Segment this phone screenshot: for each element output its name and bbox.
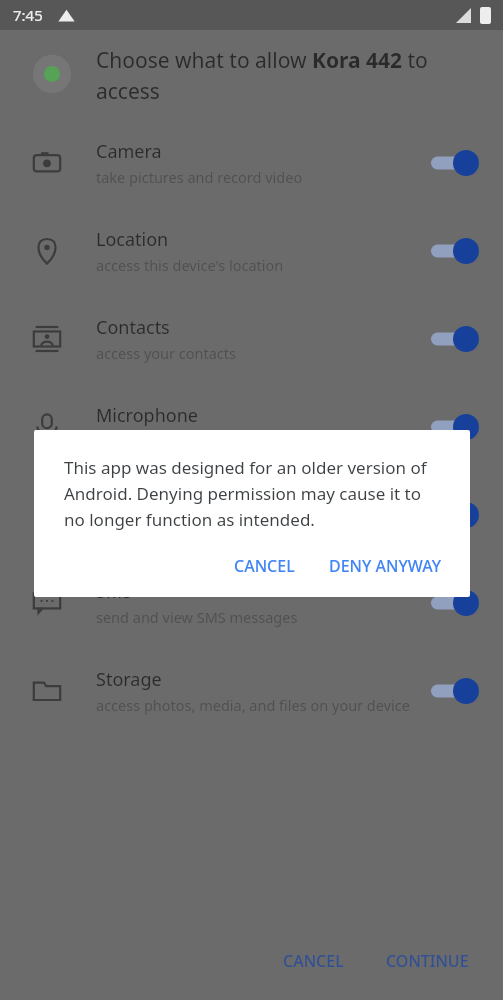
staticText: access this device's location [96,255,284,275]
button[interactable]: DENY ANYWAY [317,545,454,587]
button[interactable]: Toggle permission [429,676,481,706]
button[interactable]: Toggle permission [429,324,481,354]
button[interactable]: Toggle permission [429,236,481,266]
button[interactable]: Location [0,207,503,295]
button[interactable]: Camera [0,119,503,207]
staticText: take pictures and record video [96,167,303,187]
staticText: SMS [96,579,133,604]
button[interactable]: Contacts [0,295,503,383]
staticText: access your contacts [96,343,236,363]
staticText: 7:45 [13,5,43,25]
button[interactable]: Call logs [0,471,503,559]
staticText: Contacts [96,315,170,340]
staticText: This app was designed for an older versi… [64,456,444,531]
button[interactable]: Storage [0,647,503,735]
staticText: CANCEL [283,950,344,972]
button[interactable]: Microphone [0,383,503,471]
staticText: CANCEL [234,555,295,577]
button[interactable]: Toggle permission [429,148,481,178]
staticText: Location [96,227,169,252]
staticText: Camera [96,139,162,164]
staticText: access photos, media, and files on your … [96,695,410,715]
staticText: CONTINUE [386,950,469,972]
button[interactable]: Toggle permission [429,500,481,530]
staticText: read and write phone call log [96,519,295,539]
button[interactable]: Toggle permission [429,412,481,442]
button[interactable]: Toggle permission [429,588,481,618]
button[interactable]: CANCEL [273,942,354,980]
staticText: send and view SMS messages [96,607,298,627]
staticText: Choose what to allow Kora 442 to access [96,46,473,105]
staticText: Storage [96,667,162,692]
button[interactable]: CANCEL [222,545,307,587]
staticText: Microphone [96,403,198,428]
staticText: Call logs [96,491,167,516]
staticText: DENY ANYWAY [329,555,442,577]
button[interactable]: CONTINUE [376,942,479,980]
button[interactable]: SMS [0,559,503,647]
